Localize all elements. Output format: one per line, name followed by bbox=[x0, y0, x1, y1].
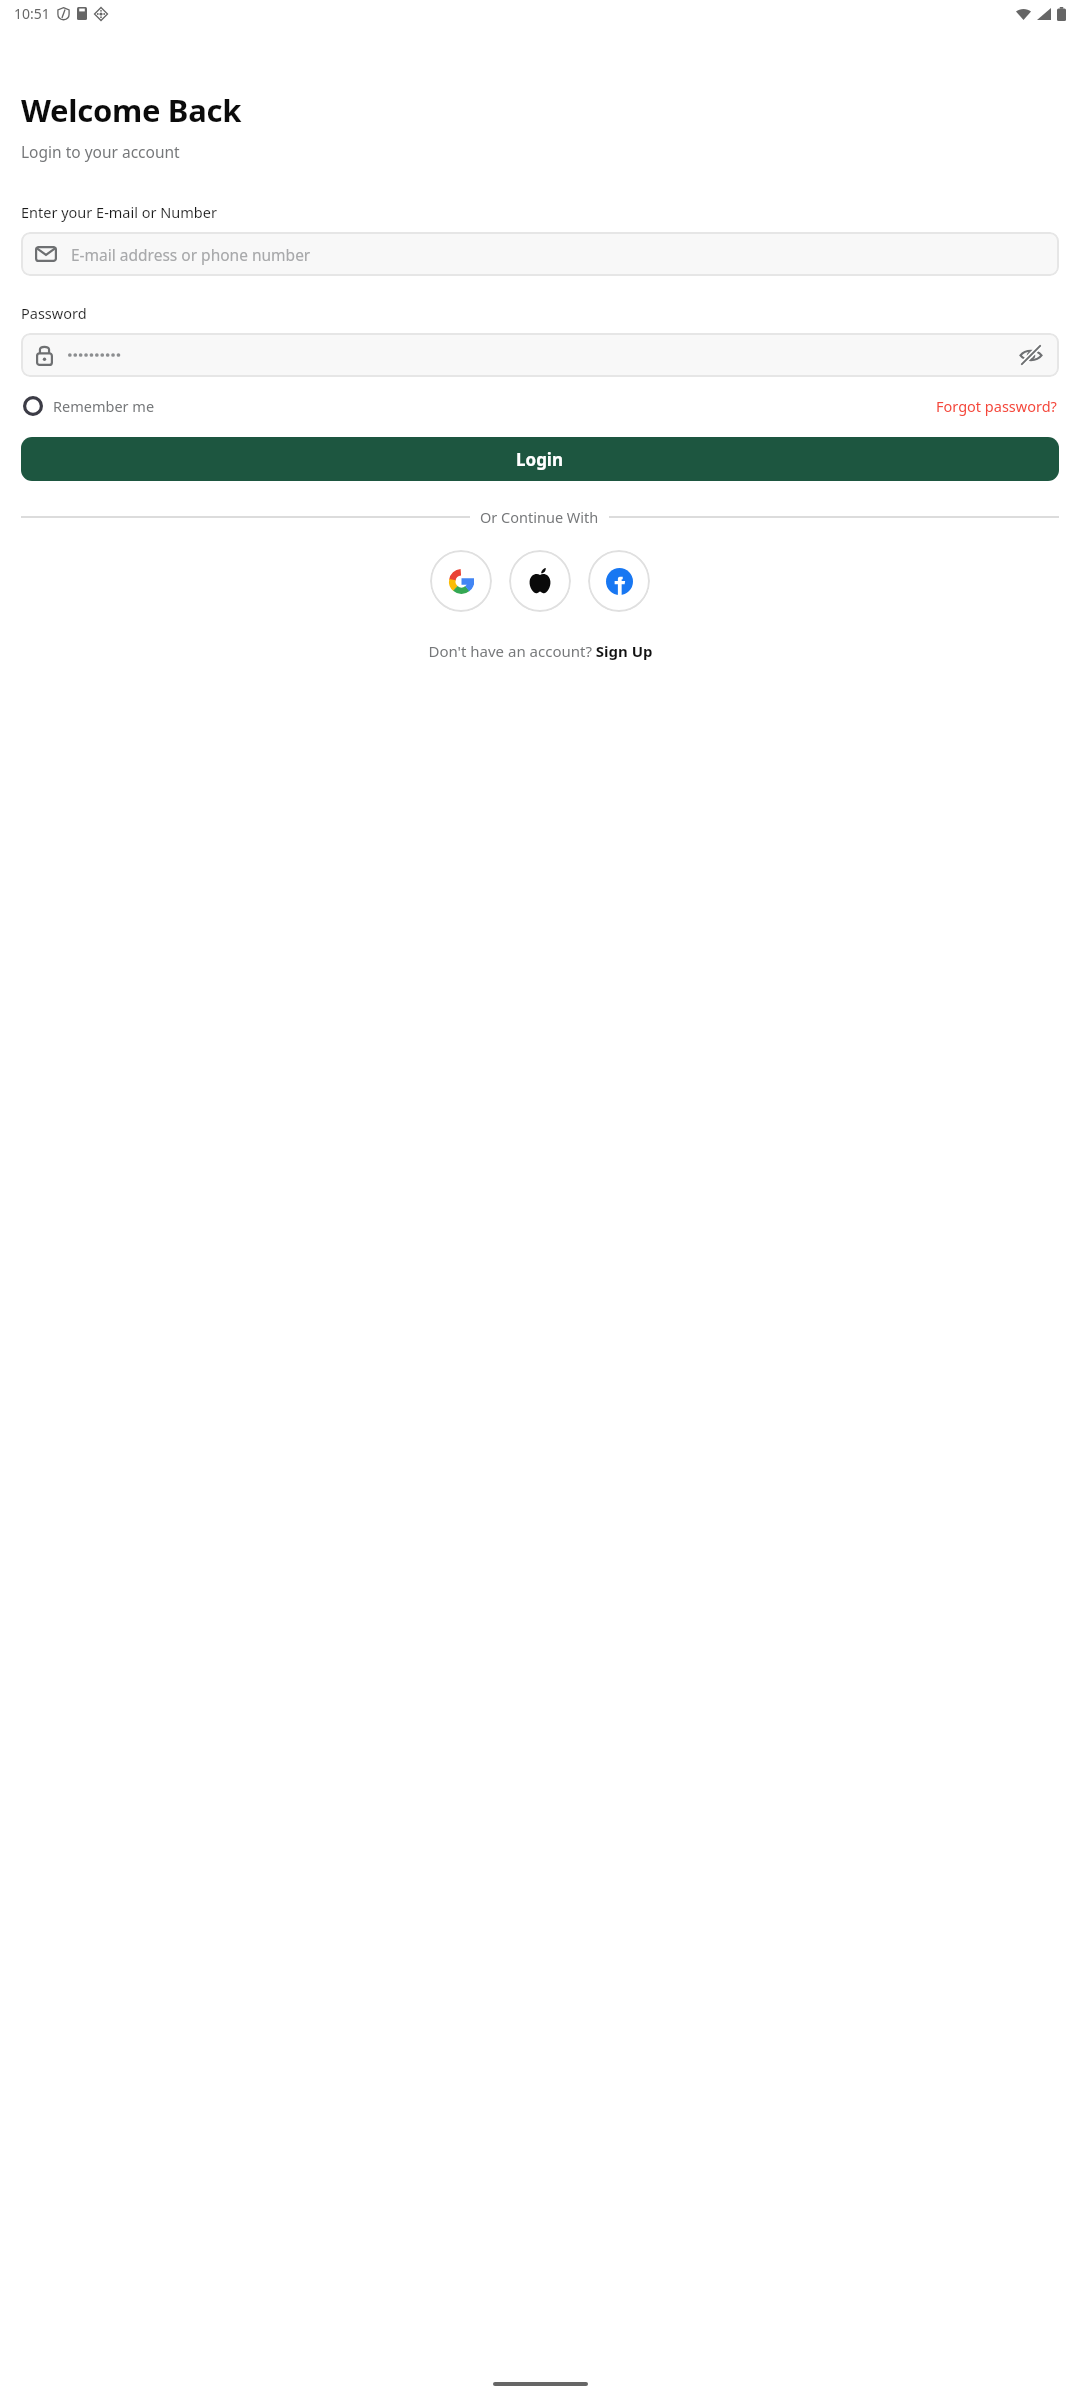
staticText: Remember me bbox=[53, 396, 155, 416]
staticText: Login bbox=[516, 448, 564, 471]
staticText: Enter your E-mail or Number bbox=[21, 202, 217, 222]
staticText: Or Continue With bbox=[480, 507, 599, 527]
staticText: 10:51 bbox=[14, 4, 50, 23]
staticText: Welcome Back bbox=[21, 89, 242, 131]
button[interactable]: E-mail address or phone number bbox=[21, 232, 1059, 276]
button[interactable]: Sign in with Google bbox=[430, 550, 492, 612]
button[interactable]: Sign in with Facebook bbox=[588, 550, 650, 612]
staticText: Don't have an account? Sign Up bbox=[428, 641, 653, 661]
button[interactable]: Sign in with Apple bbox=[509, 550, 571, 612]
button[interactable]: Forgot password? bbox=[934, 392, 1059, 420]
button[interactable]: Show password bbox=[21, 333, 1059, 377]
staticText: E-mail address or phone number bbox=[71, 244, 311, 265]
button[interactable]: Show password bbox=[1017, 341, 1045, 369]
button[interactable]: Don't have an account? Sign Up bbox=[424, 637, 657, 665]
staticText: Password bbox=[21, 303, 87, 323]
button[interactable]: Login bbox=[21, 437, 1059, 481]
button[interactable]: Remember me bbox=[21, 392, 157, 420]
staticText: Forgot password? bbox=[936, 396, 1057, 416]
staticText: Login to your account bbox=[21, 141, 180, 162]
